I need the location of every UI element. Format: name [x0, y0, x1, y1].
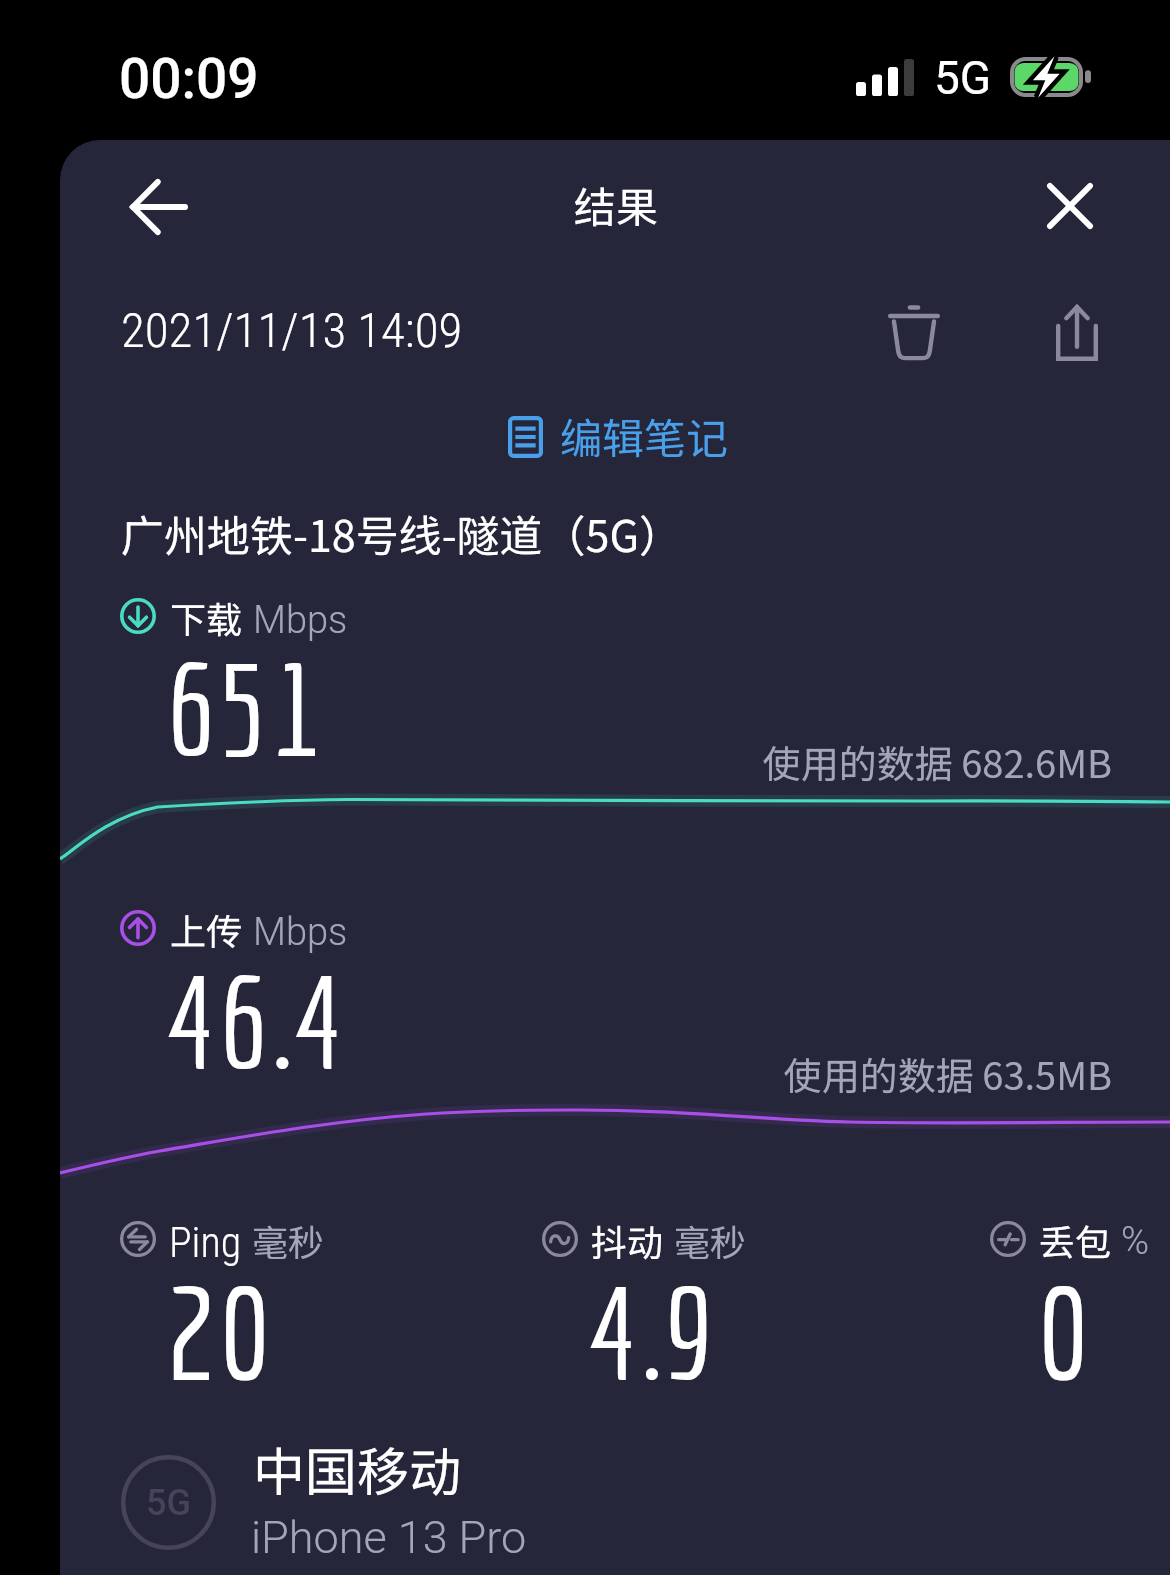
staticText: 2021/11/13 14:09 [121, 302, 463, 359]
staticText: 20 [166, 1259, 271, 1406]
staticText: 4.9 [588, 1259, 716, 1406]
staticText: % [1121, 1219, 1150, 1264]
button[interactable]: Close [1015, 151, 1125, 261]
staticText: 下载 [170, 591, 243, 643]
staticText: 46.4 [166, 948, 347, 1095]
staticText: 抖动 [591, 1214, 664, 1266]
staticText: 丢包 [1039, 1214, 1112, 1266]
staticText: 使用的数据 682.6MB [60, 734, 1112, 789]
staticText: 5G [146, 1482, 191, 1524]
staticText: Mbps [253, 598, 348, 643]
staticText: 651 [166, 635, 324, 782]
button[interactable]: Share [1027, 283, 1127, 383]
staticText: 5G [934, 51, 992, 105]
staticText: 0 [1037, 1259, 1090, 1406]
staticText: 广州地铁-18号线-隧道（5G） [121, 502, 683, 564]
staticText: Mbps [253, 910, 348, 955]
staticText: 使用的数据 63.5MB [60, 1046, 1112, 1101]
staticText: iPhone 13 Pro [251, 1511, 527, 1564]
button[interactable]: 编辑笔记 [494, 396, 743, 477]
staticText: 结果 [574, 174, 659, 235]
staticText: 毫秒 [674, 1214, 747, 1266]
staticText: 编辑笔记 [560, 405, 729, 466]
staticText: 毫秒 [252, 1214, 325, 1266]
button[interactable]: Delete [864, 282, 964, 382]
staticText: 中国移动 [253, 1431, 462, 1506]
staticText: Ping [169, 1218, 242, 1267]
staticText: 00:09 [119, 47, 259, 111]
button[interactable]: Back [104, 152, 214, 262]
staticText: 上传 [170, 903, 243, 955]
